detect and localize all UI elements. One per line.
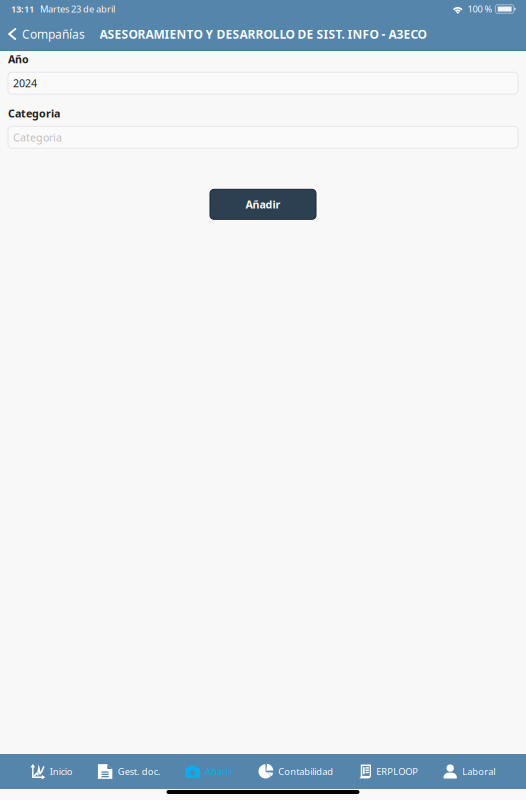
staticText: Año [8, 52, 29, 66]
button[interactable]: Contabilidad [259, 754, 333, 788]
staticText: Añadir [245, 197, 280, 211]
staticText: Contabilidad [278, 765, 333, 778]
staticText: Categoria [8, 106, 60, 120]
staticText: 2024 [13, 76, 37, 90]
button[interactable]: Laboral [443, 754, 495, 788]
staticText: 13:11 [11, 3, 34, 15]
staticText: Categoria [13, 130, 62, 144]
staticText: 100 % [467, 3, 492, 15]
staticText: Laboral [462, 765, 495, 778]
button[interactable]: Añadir [185, 754, 234, 788]
staticText: Compañías [22, 26, 85, 42]
staticText: Inicio [50, 765, 73, 778]
staticText: Gest. doc. [118, 765, 161, 778]
staticText: Añadir [205, 765, 234, 778]
staticText: ASESORAMIENTO Y DESARROLLO DE SIST. INFO… [99, 26, 426, 42]
staticText: ERPLOOP [376, 765, 418, 778]
button[interactable]: Inicio [31, 754, 73, 788]
button[interactable]: Añadir [210, 189, 316, 219]
button[interactable]: Gest. doc. [98, 754, 161, 788]
staticText: Martes 23 de abril [40, 3, 115, 15]
button[interactable]: Compañías [0, 18, 95, 50]
button[interactable]: ERPLOOP [358, 754, 418, 788]
